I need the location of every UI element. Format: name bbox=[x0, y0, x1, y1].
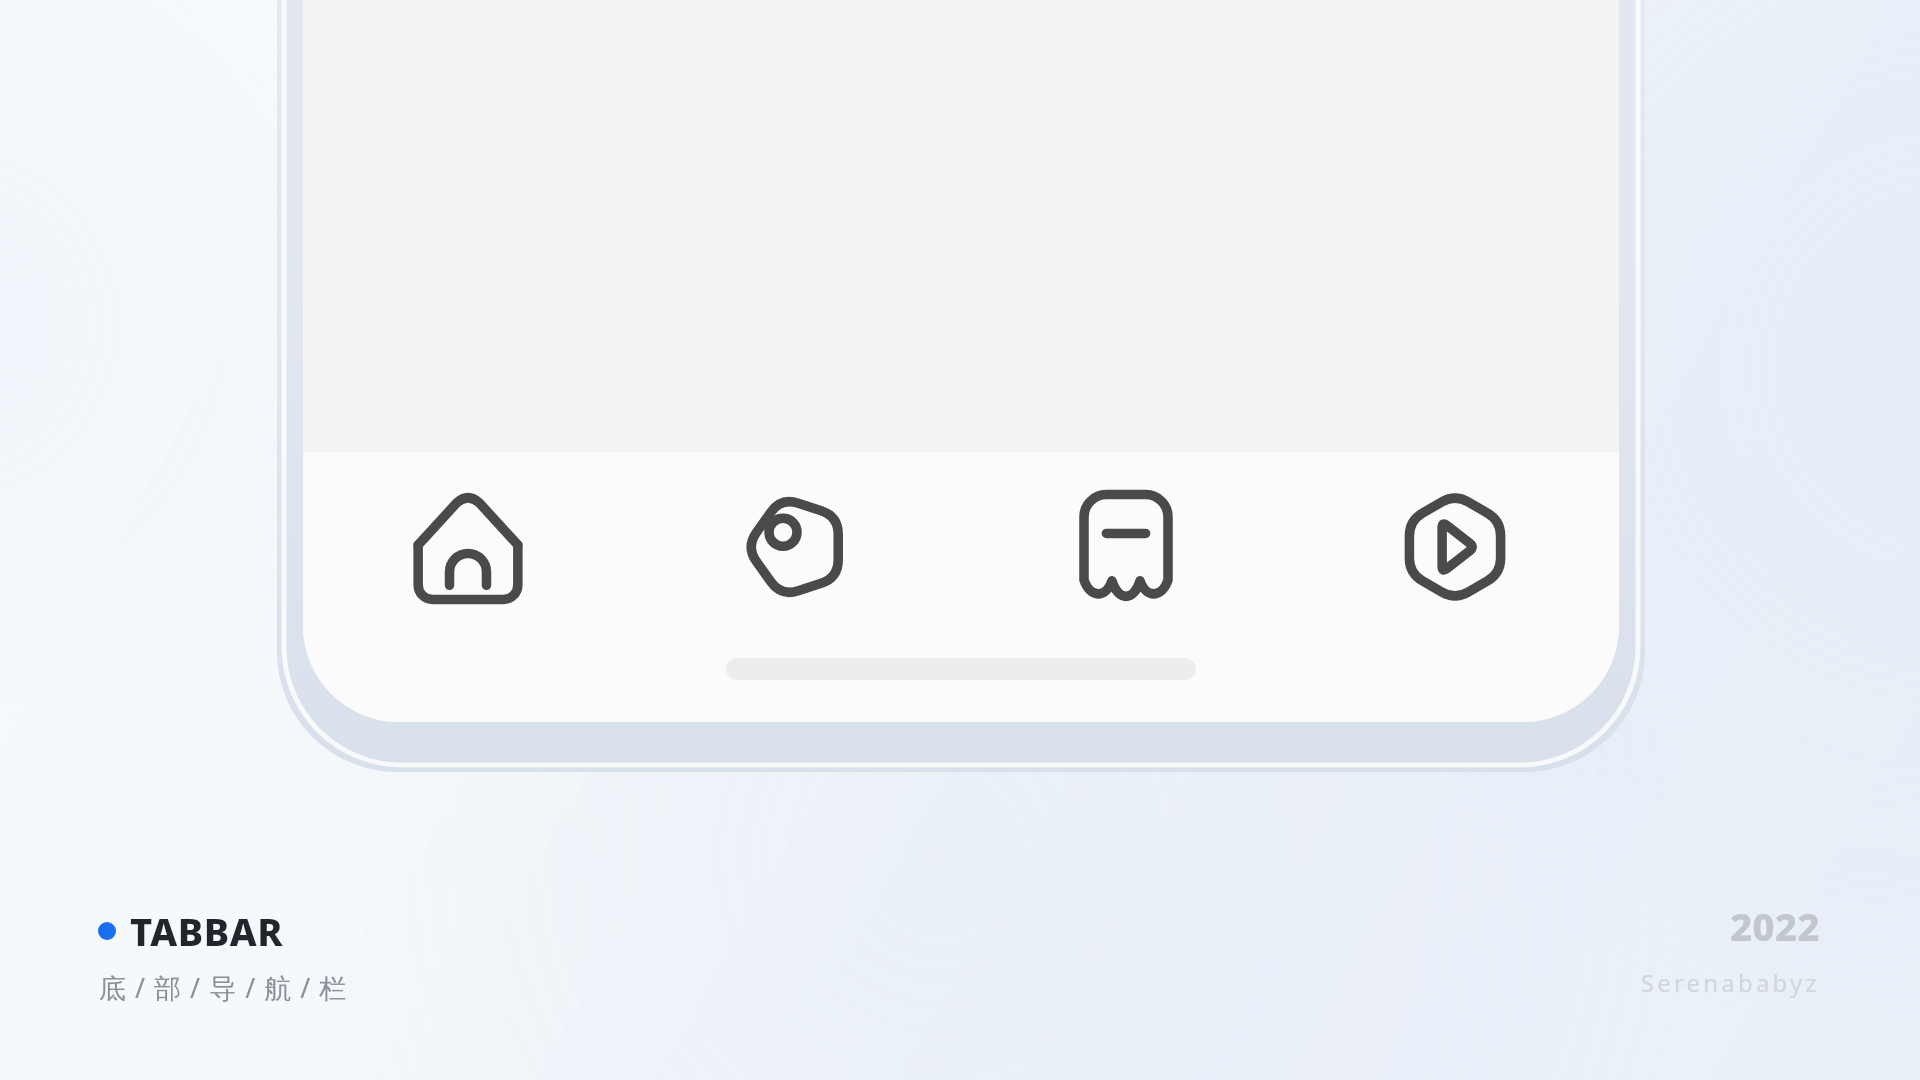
button[interactable]: Tags bbox=[632, 452, 961, 642]
staticText: 2022 bbox=[1730, 900, 1820, 952]
button[interactable]: Orders bbox=[961, 452, 1290, 642]
staticText: Serenababyz bbox=[1640, 966, 1820, 999]
button[interactable]: Videos bbox=[1290, 452, 1619, 642]
button[interactable]: Home bbox=[303, 452, 632, 642]
staticText: TABBAR bbox=[130, 905, 284, 957]
staticText: 底 / 部 / 导 / 航 / 栏 bbox=[99, 969, 348, 1006]
